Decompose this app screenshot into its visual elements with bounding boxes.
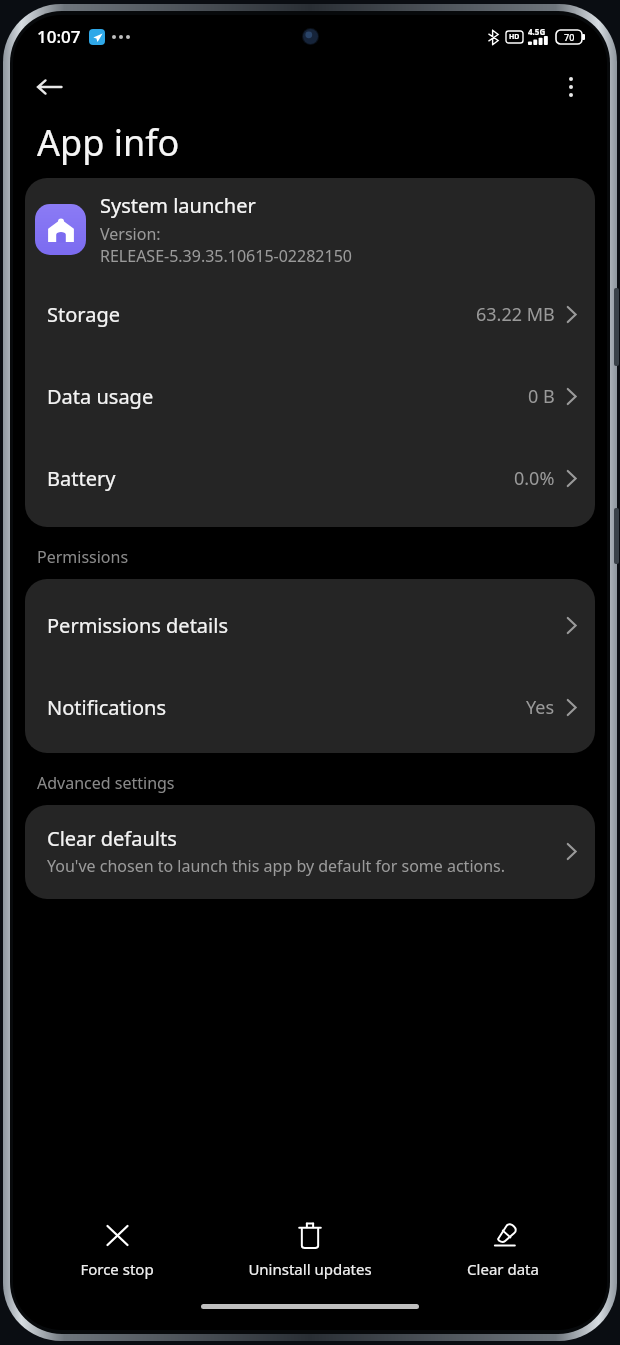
staticText: 10:07 [37, 25, 81, 48]
staticText: System launcher [100, 192, 256, 219]
button[interactable]: Permissions details [25, 584, 595, 666]
staticText: Advanced settings [37, 772, 175, 794]
staticText: Data usage [47, 383, 528, 410]
staticText: HD [509, 32, 520, 42]
staticText: RELEASE-5.39.35.10615-02282150 [100, 245, 352, 267]
staticText: Clear defaults [47, 825, 177, 852]
button[interactable]: More options [547, 63, 595, 111]
button[interactable]: Uninstall updates [213, 1211, 406, 1288]
staticText: You've chosen to launch this app by defa… [47, 855, 506, 877]
staticText: App info [37, 118, 180, 167]
staticText: Battery [47, 465, 514, 492]
staticText: Version: [100, 223, 161, 245]
staticText: Uninstall updates [248, 1259, 372, 1279]
staticText: 0 B [528, 384, 555, 409]
staticText: Force stop [80, 1259, 154, 1279]
staticText: Storage [47, 301, 476, 328]
button[interactable]: Data usage [25, 355, 595, 437]
button[interactable]: Battery [25, 437, 595, 519]
button[interactable]: Clear defaults [25, 805, 595, 899]
button[interactable]: Storage [25, 273, 595, 355]
staticText: 63.22 MB [476, 302, 555, 327]
button[interactable]: Force stop [21, 1211, 213, 1288]
staticText: Notifications [47, 694, 526, 721]
staticText: Clear data [467, 1259, 539, 1279]
staticText: Permissions details [47, 612, 555, 639]
staticText: 70 [564, 31, 575, 43]
button[interactable]: Clear data [406, 1211, 599, 1288]
staticText: Yes [526, 695, 555, 720]
staticText: 0.0% [514, 466, 555, 491]
staticText: 4.5G [528, 26, 546, 37]
button[interactable]: Notifications [25, 666, 595, 748]
staticText: Permissions [37, 546, 129, 568]
button[interactable]: Back [25, 63, 73, 111]
